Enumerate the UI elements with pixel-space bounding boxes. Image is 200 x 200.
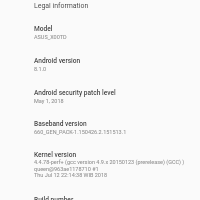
button[interactable]: Kernel version [0, 150, 200, 179]
staticText: 8.1.0 [34, 66, 47, 72]
staticText: Kernel version [34, 151, 77, 159]
staticText: queen@963ae1178710 #1 [34, 166, 99, 172]
button[interactable]: Android security patch level [0, 88, 200, 104]
button[interactable]: Build number [0, 195, 200, 200]
staticText: Thu Jul 12 22:14:38 WIB 2018 [34, 172, 108, 178]
staticText: 4.4.78-perf+ (gcc version 4.9.x 20150123… [34, 159, 185, 165]
staticText: Model [34, 25, 53, 33]
staticText: Legal information [34, 2, 89, 10]
button[interactable]: Model [0, 24, 200, 40]
staticText: Android security patch level [34, 89, 116, 97]
button[interactable]: Baseband version [0, 119, 200, 135]
staticText: Android version [34, 57, 81, 65]
staticText: 660_GEN_PACK-1.150426.2.151513.1 [34, 129, 127, 135]
button[interactable]: Android version [0, 56, 200, 72]
staticText: ASUS_X00TD [34, 34, 67, 40]
staticText: Build number [34, 196, 74, 200]
staticText: Baseband version [34, 120, 87, 128]
staticText: May 1, 2018 [34, 98, 64, 104]
